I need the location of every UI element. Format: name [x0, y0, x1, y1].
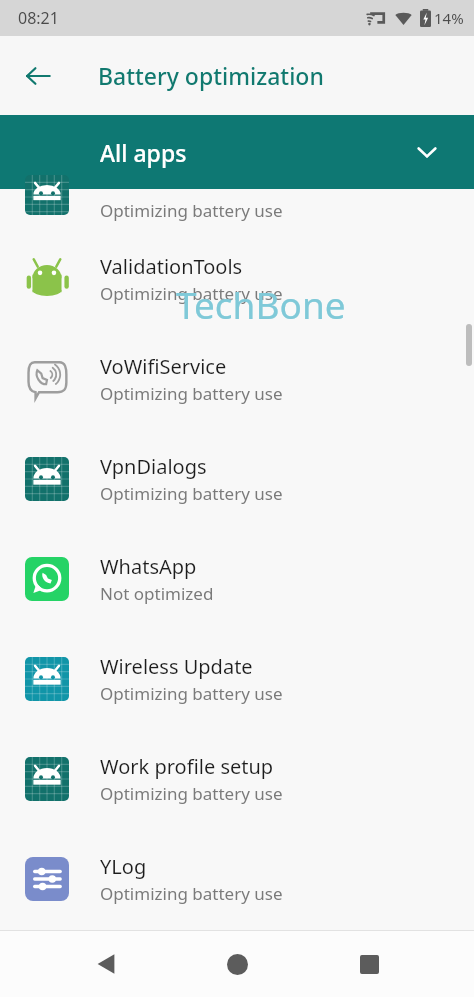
button[interactable]: WhatsApp: [0, 529, 474, 629]
staticText: TechBone: [176, 279, 346, 329]
button[interactable]: All apps: [0, 115, 474, 189]
staticText: VpnDialogs: [100, 453, 207, 480]
staticText: Not optimized: [100, 582, 214, 605]
staticText: Optimizing battery use: [100, 282, 283, 305]
button[interactable]: Work profile setup: [0, 729, 474, 829]
staticText: All apps: [100, 137, 187, 168]
staticText: YLog: [100, 853, 147, 880]
staticText: 08:21: [18, 7, 59, 29]
staticText: 14%: [434, 8, 464, 28]
button[interactable]: Recent apps: [343, 938, 395, 990]
button[interactable]: VpnDialogs: [0, 429, 474, 529]
button[interactable]: Home: [211, 938, 263, 990]
button[interactable]: Optimizing battery use: [0, 189, 474, 229]
staticText: Optimizing battery use: [100, 482, 283, 505]
staticText: Optimizing battery use: [100, 782, 283, 805]
staticText: Optimizing battery use: [100, 882, 283, 905]
staticText: Work profile setup: [100, 753, 274, 780]
staticText: ValidationTools: [100, 253, 243, 280]
button[interactable]: Wireless Update: [0, 629, 474, 729]
staticText: Battery optimization: [98, 60, 324, 91]
staticText: WhatsApp: [100, 553, 197, 580]
staticText: VoWifiService: [100, 353, 227, 380]
staticText: Optimizing battery use: [100, 382, 283, 405]
staticText: Optimizing battery use: [100, 199, 283, 222]
button[interactable]: Back: [14, 52, 62, 100]
staticText: Wireless Update: [100, 653, 253, 680]
button[interactable]: VoWifiService: [0, 329, 474, 429]
staticText: Optimizing battery use: [100, 682, 283, 705]
button[interactable]: ValidationTools: [0, 229, 474, 329]
button[interactable]: YLog: [0, 829, 474, 929]
button[interactable]: Back: [80, 938, 132, 990]
